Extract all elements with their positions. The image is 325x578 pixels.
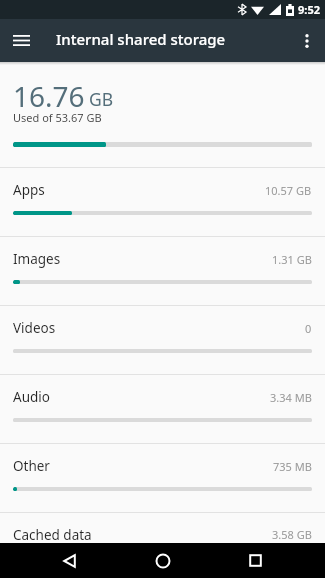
staticText: GB xyxy=(89,87,114,111)
staticText: Cached data xyxy=(13,526,92,543)
staticText: Used of 53.67 GB xyxy=(13,110,102,125)
staticText: 10.57 GB xyxy=(265,183,312,198)
staticText: 16.76 xyxy=(13,77,85,115)
staticText: Other xyxy=(13,457,50,475)
button[interactable] xyxy=(209,543,302,578)
staticText: Apps xyxy=(13,181,45,199)
button[interactable]: Other xyxy=(0,444,325,512)
staticText: Images xyxy=(13,250,61,268)
button[interactable]: Audio xyxy=(0,375,325,443)
staticText: 3.34 MB xyxy=(270,390,312,405)
button[interactable]: Cached data xyxy=(0,513,325,543)
button[interactable]: Apps xyxy=(0,168,325,236)
staticText: 3.58 GB xyxy=(272,527,312,542)
staticText: Audio xyxy=(13,388,50,406)
staticText: 1.31 GB xyxy=(272,252,312,267)
staticText: 0 xyxy=(305,321,312,336)
staticText: Internal shared storage xyxy=(56,29,226,49)
button[interactable] xyxy=(116,543,209,578)
button[interactable]: Images xyxy=(0,237,325,305)
button[interactable]: Videos xyxy=(0,306,325,374)
button[interactable] xyxy=(289,19,325,62)
staticText: Videos xyxy=(13,319,56,337)
staticText: 735 MB xyxy=(273,459,312,474)
button[interactable] xyxy=(0,19,43,62)
button[interactable] xyxy=(23,543,116,578)
staticText: 9:52 xyxy=(298,2,320,17)
